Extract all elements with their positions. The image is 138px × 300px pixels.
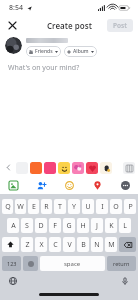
button[interactable]: M [105,237,117,252]
staticText: I [101,202,104,212]
button[interactable]: Feeling [61,177,77,193]
button[interactable]: 123 [2,256,21,271]
button[interactable]: U [82,199,94,214]
button[interactable]: V [63,237,75,252]
staticText: G [66,221,72,231]
button[interactable]: G [63,218,75,233]
staticText: O [113,202,119,212]
button[interactable]: O [110,199,122,214]
button[interactable]: Y [68,199,80,214]
button[interactable]: Check in [89,177,105,193]
button[interactable]: Backspace [119,237,136,252]
staticText: V [67,240,72,250]
button[interactable]: T [54,199,66,214]
staticText: R [44,202,49,212]
staticText: M [108,240,115,250]
staticText: D [38,221,44,231]
button[interactable]: Emoji [23,256,38,271]
button[interactable]: I [96,199,108,214]
button[interactable]: Friends [26,46,61,57]
button[interactable]: Sticker [86,162,98,174]
button[interactable]: return [107,256,136,271]
button[interactable]: J [91,218,103,233]
staticText: Post [113,21,127,30]
staticText: return [113,260,130,267]
staticText: N [94,240,100,250]
staticText: J [96,221,98,231]
staticText: Q [5,202,11,212]
button[interactable]: Back [3,162,14,173]
button[interactable]: Q [2,199,13,214]
button[interactable]: C [49,237,61,252]
staticText: Z [25,240,30,250]
staticText: X [39,240,44,250]
button[interactable]: Dictate [119,275,131,287]
button[interactable]: L [119,218,131,233]
staticText: 8:54 [9,3,23,13]
staticText: W [17,202,24,212]
button[interactable]: D [35,218,47,233]
button[interactable]: E [28,199,39,214]
staticText: Create post [47,20,92,31]
button[interactable]: Sticker [30,162,42,174]
staticText: space [64,260,81,268]
button[interactable]: N [91,237,103,252]
button[interactable]: R [41,199,52,214]
button[interactable]: Sticker [72,162,84,174]
staticText: C [53,240,58,250]
button[interactable]: Close [4,17,20,33]
staticText: K [109,221,114,231]
button[interactable]: A [7,218,19,233]
button[interactable]: F [49,218,61,233]
staticText: L [123,221,127,231]
button[interactable]: Tag people [33,177,49,193]
staticText: F [53,221,57,231]
button[interactable]: P [124,199,136,214]
button[interactable]: W [15,199,26,214]
button[interactable]: K [105,218,117,233]
staticText: What's on your mind? [8,63,80,73]
button[interactable]: S [21,218,33,233]
button[interactable]: Album [64,46,97,57]
button[interactable]: Sticker [44,162,56,174]
staticText: P [128,202,133,212]
staticText: T [58,202,62,212]
staticText: 123 [7,260,17,267]
button[interactable]: Keyboard [123,162,135,174]
staticText: H [80,221,86,231]
button[interactable]: B [77,237,89,252]
staticText: S [25,221,29,231]
button[interactable]: Z [21,237,33,252]
button[interactable]: Photo [5,177,21,193]
staticText: Y [72,202,76,212]
staticText: Album [73,48,89,55]
button[interactable]: Change keyboard [7,275,19,287]
button[interactable]: H [77,218,89,233]
button[interactable]: Shift [2,237,19,252]
button[interactable]: More [117,177,133,193]
button[interactable]: space [40,256,105,271]
staticText: A [11,221,16,231]
staticText: U [85,202,91,212]
button[interactable]: Sticker [58,162,70,174]
button[interactable]: Sticker [100,162,112,174]
button[interactable]: Post [107,19,133,32]
button[interactable]: X [35,237,47,252]
staticText: Friends [35,48,53,55]
staticText: E [32,202,36,212]
staticText: B [81,240,86,250]
